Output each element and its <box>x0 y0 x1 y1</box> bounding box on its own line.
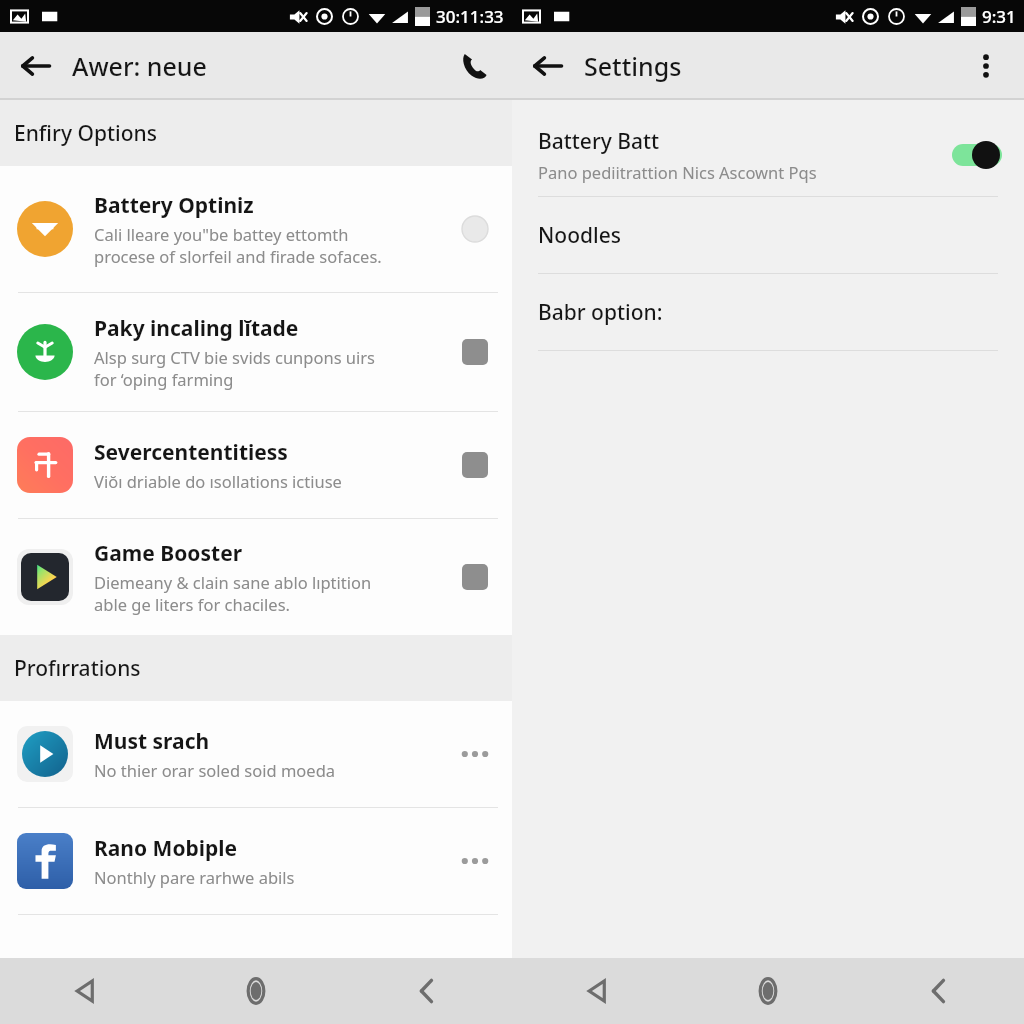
staticText: Pano pediitrattion Nics Ascownt Pqs <box>538 161 817 183</box>
button[interactable]: Game Booster <box>0 519 512 635</box>
button[interactable]: Call <box>448 40 500 92</box>
button[interactable]: Rano Mobiple <box>0 808 512 914</box>
button[interactable]: Babr option: <box>512 274 1024 350</box>
button[interactable]: More options <box>960 40 1012 92</box>
other: More options <box>973 53 999 79</box>
staticText: Battery Batt <box>538 127 660 156</box>
staticText: Enfiry Options <box>14 119 157 148</box>
button[interactable]: Battery toggle <box>936 133 1002 177</box>
staticText: Must srach <box>94 727 210 756</box>
button[interactable]: Checkbox <box>457 559 493 595</box>
button[interactable]: Checkbox <box>457 447 493 483</box>
staticText: Alsp surg CTV bie svids cunpons uirs <box>94 346 376 368</box>
other: Call <box>460 52 488 80</box>
staticText: Paky incaling lĭtade <box>94 314 299 343</box>
staticText: Game Booster <box>94 539 243 568</box>
staticText: Awer: neue <box>72 49 207 83</box>
button[interactable]: Home <box>170 958 341 1024</box>
button[interactable]: Toggle off <box>457 211 493 247</box>
button[interactable]: Battery Optiniz <box>0 166 512 292</box>
button[interactable]: Back <box>10 40 62 92</box>
staticText: Babr option: <box>538 298 663 327</box>
button[interactable]: Back <box>512 958 682 1024</box>
staticText: Viŏı driable do ısollations ictiuse <box>94 470 342 492</box>
button[interactable]: Recents <box>853 958 1024 1024</box>
button[interactable]: Severcententitiess <box>0 412 512 518</box>
staticText: No thier orar soled soid moeda <box>94 759 336 781</box>
staticText: 9:31 <box>982 5 1016 28</box>
button[interactable]: Back <box>0 958 170 1024</box>
button[interactable]: Paky incaling lĭtade <box>0 293 512 411</box>
staticText: Severcententitiess <box>94 438 288 467</box>
button[interactable]: Recents <box>341 958 512 1024</box>
button[interactable]: Back <box>522 40 574 92</box>
button[interactable]: Noodles <box>512 197 1024 273</box>
staticText: Battery Optiniz <box>94 191 254 220</box>
staticText: for ‘oping farming <box>94 368 234 390</box>
button[interactable]: More options <box>455 734 495 774</box>
staticText: Cali lleare you"be battey ettomth <box>94 223 349 245</box>
button[interactable]: Home <box>682 958 853 1024</box>
staticText: Nonthly pare rarhwe abils <box>94 866 295 888</box>
staticText: able ge liters for chaciles. <box>94 593 290 615</box>
staticText: Rano Mobiple <box>94 834 238 863</box>
staticText: Diemeany & clain sane ablo lıptition <box>94 571 372 593</box>
staticText: Noodles <box>538 221 621 250</box>
button[interactable]: More options <box>455 841 495 881</box>
staticText: 30:11:33 <box>436 5 504 28</box>
button[interactable]: Battery Batt <box>512 114 1024 196</box>
staticText: Profırrations <box>14 654 141 683</box>
staticText: procese of slorfeil and firade sofaces. <box>94 245 382 267</box>
button[interactable]: Must srach <box>0 701 512 807</box>
button[interactable]: Checkbox <box>457 334 493 370</box>
staticText: Settings <box>584 49 682 83</box>
